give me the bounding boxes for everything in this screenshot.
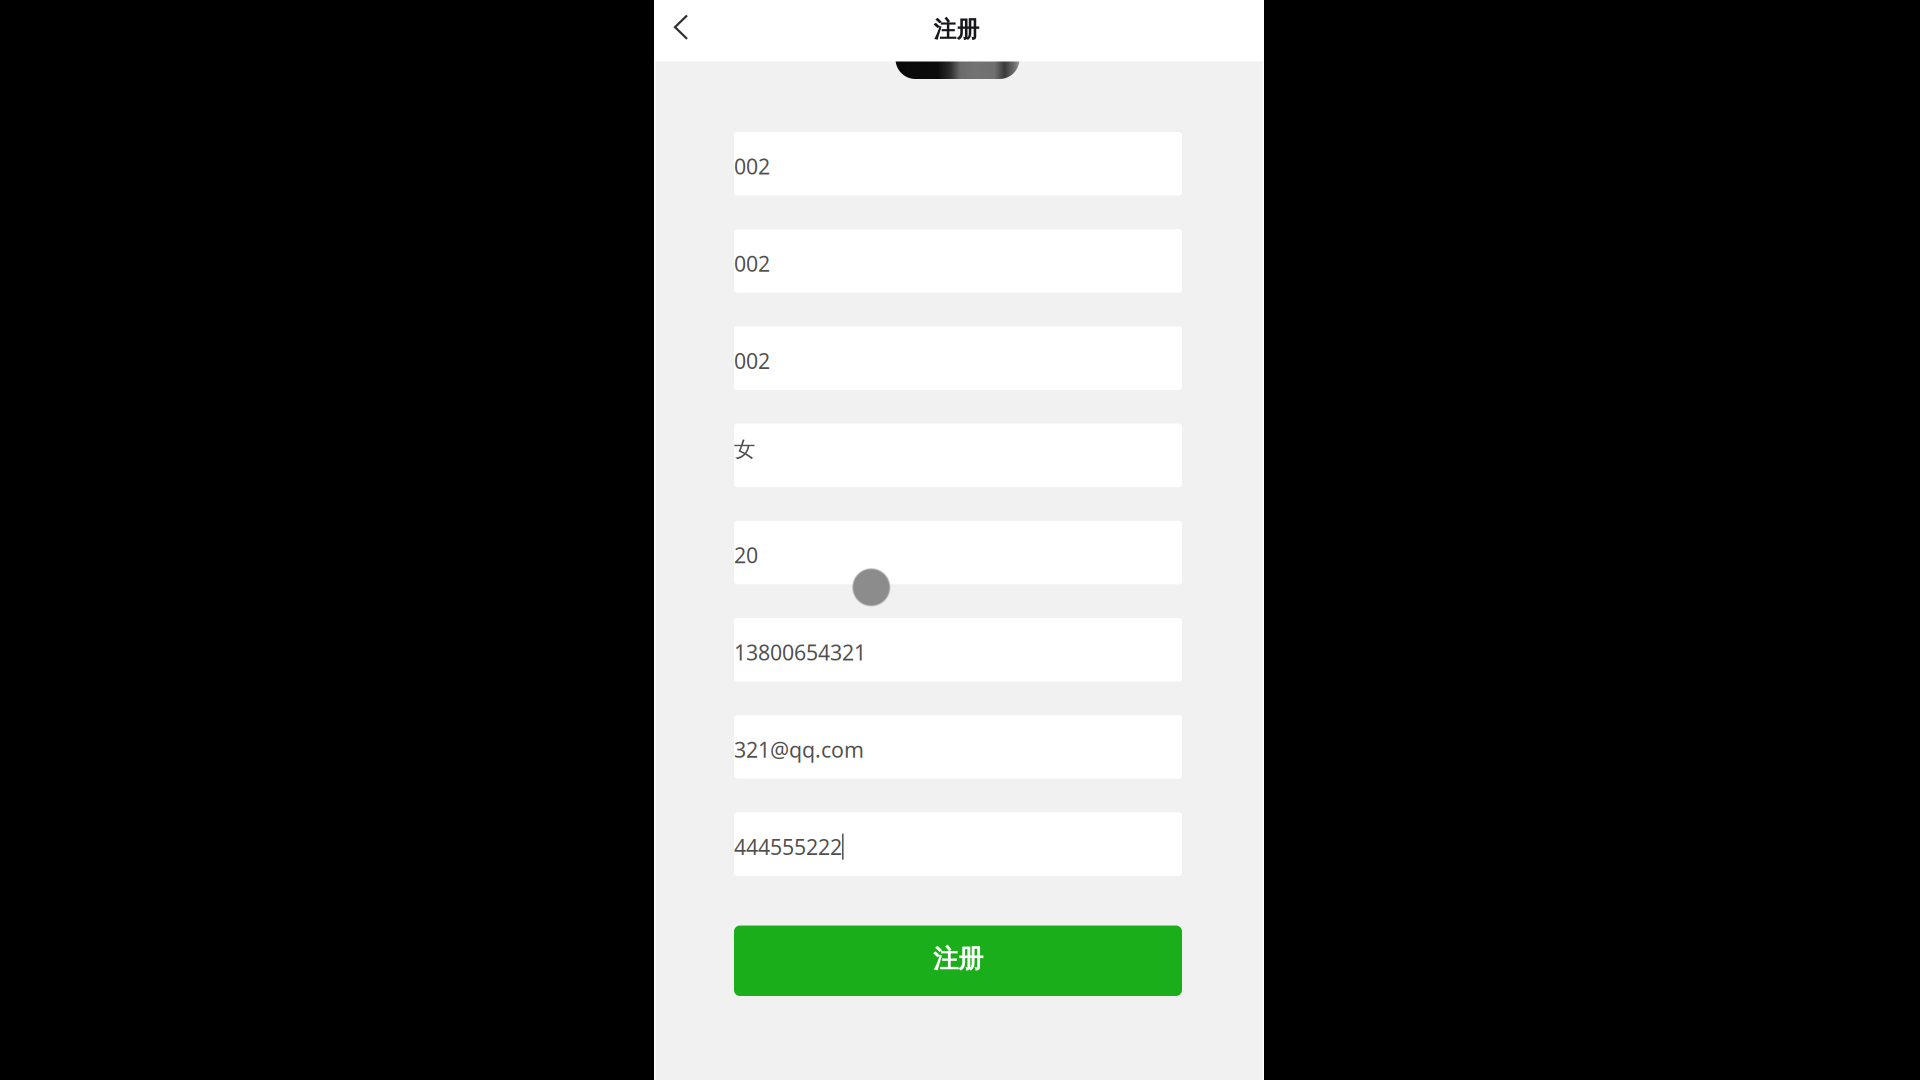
button[interactable]: 002: [734, 326, 1182, 390]
staticText: 女: [734, 436, 755, 462]
staticText: 注册: [933, 943, 983, 974]
staticText: 321@qq.com: [734, 735, 864, 764]
button[interactable]: Back: [655, 0, 707, 61]
button[interactable]: 20: [734, 521, 1182, 584]
button[interactable]: 444555222: [734, 812, 1182, 876]
button[interactable]: 321@qq.com: [734, 715, 1182, 779]
staticText: 注册: [933, 15, 979, 43]
button[interactable]: 13800654321: [734, 618, 1182, 681]
staticText: 444555222: [734, 832, 842, 861]
staticText: 20: [734, 541, 758, 569]
button[interactable]: 女: [734, 424, 1182, 487]
button[interactable]: 002: [734, 132, 1182, 195]
staticText: 13800654321: [734, 638, 866, 666]
staticText: 002: [734, 152, 770, 180]
staticText: 002: [734, 249, 770, 278]
staticText: 002: [734, 346, 770, 375]
button[interactable]: 注册: [734, 925, 1182, 996]
button[interactable]: 002: [734, 229, 1182, 293]
